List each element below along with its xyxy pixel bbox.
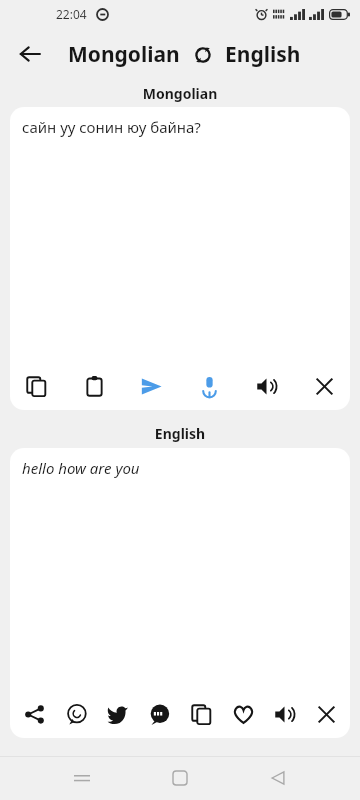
button[interactable]: Copy [183,696,219,732]
staticText: English [0,424,360,443]
button[interactable]: Swap languages [190,42,216,68]
button[interactable]: Back [8,32,52,76]
button[interactable]: Twitter [99,696,135,732]
button[interactable]: Listen [248,368,284,404]
staticText: 22:04 [56,6,87,22]
button[interactable]: Home [158,756,202,800]
button[interactable]: Mongolian [68,40,301,69]
staticText: English [225,40,301,69]
button[interactable]: SMS [141,696,177,732]
button[interactable]: Translate [133,368,169,404]
button[interactable]: Speak [191,368,227,404]
staticText: сайн уу сонин юу байна? [22,117,201,137]
button[interactable]: Listen [266,696,302,732]
button[interactable]: Recent apps [60,756,104,800]
staticText: Mongolian [68,40,180,69]
button[interactable]: Back [256,756,300,800]
button[interactable]: Clear [308,696,344,732]
button[interactable]: Copy [18,368,54,404]
button[interactable]: Paste [76,368,112,404]
button[interactable]: Favourite [225,696,261,732]
button[interactable]: Share [16,696,52,732]
staticText: hello how are you [22,458,140,478]
button[interactable]: Clear [306,368,342,404]
button[interactable]: WhatsApp [58,696,94,732]
staticText: Mongolian [0,84,360,103]
